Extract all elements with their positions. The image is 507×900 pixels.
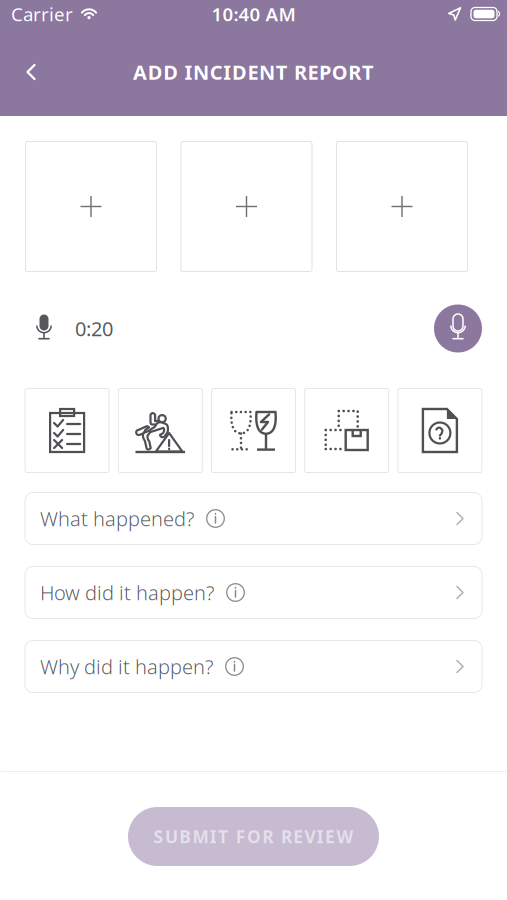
staticText: 0:20 bbox=[75, 315, 113, 342]
button[interactable]: Add photo bbox=[181, 141, 312, 271]
button[interactable]: Record audio bbox=[434, 304, 482, 352]
button[interactable] bbox=[305, 388, 389, 472]
button[interactable]: How did it happen? bbox=[25, 566, 482, 618]
button[interactable]: Add photo bbox=[336, 141, 467, 271]
button[interactable]: 0:20 bbox=[33, 313, 113, 343]
button[interactable] bbox=[118, 388, 202, 472]
button[interactable] bbox=[25, 388, 109, 472]
button[interactable]: Why did it happen? bbox=[25, 640, 482, 692]
button[interactable]: Add photo bbox=[25, 141, 156, 271]
staticText: What happened? bbox=[40, 505, 194, 532]
button[interactable] bbox=[211, 388, 295, 472]
button[interactable]: Back bbox=[9, 50, 53, 94]
staticText: 10:40 AM bbox=[211, 2, 295, 26]
staticText: SUBMIT FOR REVIEW bbox=[154, 825, 353, 848]
button[interactable] bbox=[398, 388, 482, 472]
button[interactable]: SUBMIT FOR REVIEW bbox=[128, 807, 379, 866]
staticText: How did it happen? bbox=[40, 579, 214, 606]
staticText: ADD INCIDENT REPORT bbox=[133, 59, 374, 85]
staticText: Why did it happen? bbox=[40, 653, 213, 680]
staticText: Carrier bbox=[11, 2, 73, 26]
button[interactable]: What happened? bbox=[25, 492, 482, 544]
